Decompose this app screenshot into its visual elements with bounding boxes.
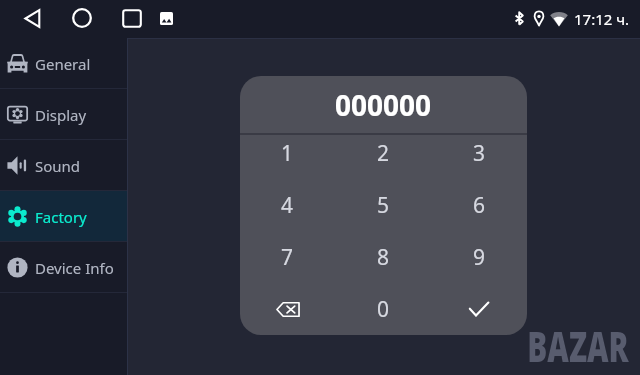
button[interactable]: 1 <box>240 127 335 179</box>
staticText: Factory <box>35 207 87 227</box>
staticText: 0 <box>377 295 390 324</box>
other: Wi-Fi <box>550 11 568 27</box>
button[interactable]: Recents <box>122 9 142 28</box>
button[interactable]: Device Info <box>0 242 128 293</box>
button[interactable]: Home <box>72 8 92 28</box>
button[interactable]: 0 <box>335 283 431 335</box>
other: Confirm <box>469 302 489 316</box>
button[interactable]: 6 <box>431 179 527 231</box>
staticText: Sound <box>35 156 81 176</box>
button[interactable]: 4 <box>240 179 335 231</box>
button[interactable]: Back <box>24 9 41 28</box>
button[interactable]: 2 <box>335 127 431 179</box>
staticText: 1 <box>281 139 294 168</box>
staticText: 3 <box>473 139 486 168</box>
button[interactable]: 9 <box>431 231 527 283</box>
staticText: BAZAR <box>527 318 629 375</box>
button[interactable]: 8 <box>335 231 431 283</box>
staticText: Display <box>35 105 87 125</box>
staticText: 5 <box>377 191 390 220</box>
other: Location <box>534 11 544 26</box>
staticText: Device Info <box>35 258 114 278</box>
button[interactable]: Gallery <box>160 12 173 25</box>
other: Bluetooth <box>514 11 524 26</box>
button[interactable]: Factory <box>0 191 128 242</box>
other: Backspace <box>276 302 300 317</box>
staticText: 17:12 ч. <box>574 9 630 29</box>
button[interactable]: Backspace <box>240 283 335 335</box>
staticText: General <box>35 54 91 74</box>
button[interactable]: Sound <box>0 140 128 191</box>
staticText: 6 <box>473 191 486 220</box>
staticText: 2 <box>377 139 390 168</box>
button[interactable]: 5 <box>335 179 431 231</box>
button[interactable]: Display <box>0 89 128 140</box>
button[interactable]: General <box>0 38 128 89</box>
button[interactable]: 3 <box>431 127 527 179</box>
button[interactable]: 7 <box>240 231 335 283</box>
staticText: 8 <box>377 243 390 272</box>
staticText: 4 <box>281 191 294 220</box>
staticText: 7 <box>281 243 294 272</box>
staticText: 000000 <box>335 86 432 124</box>
button[interactable]: Confirm <box>431 283 527 335</box>
staticText: 9 <box>473 243 486 272</box>
